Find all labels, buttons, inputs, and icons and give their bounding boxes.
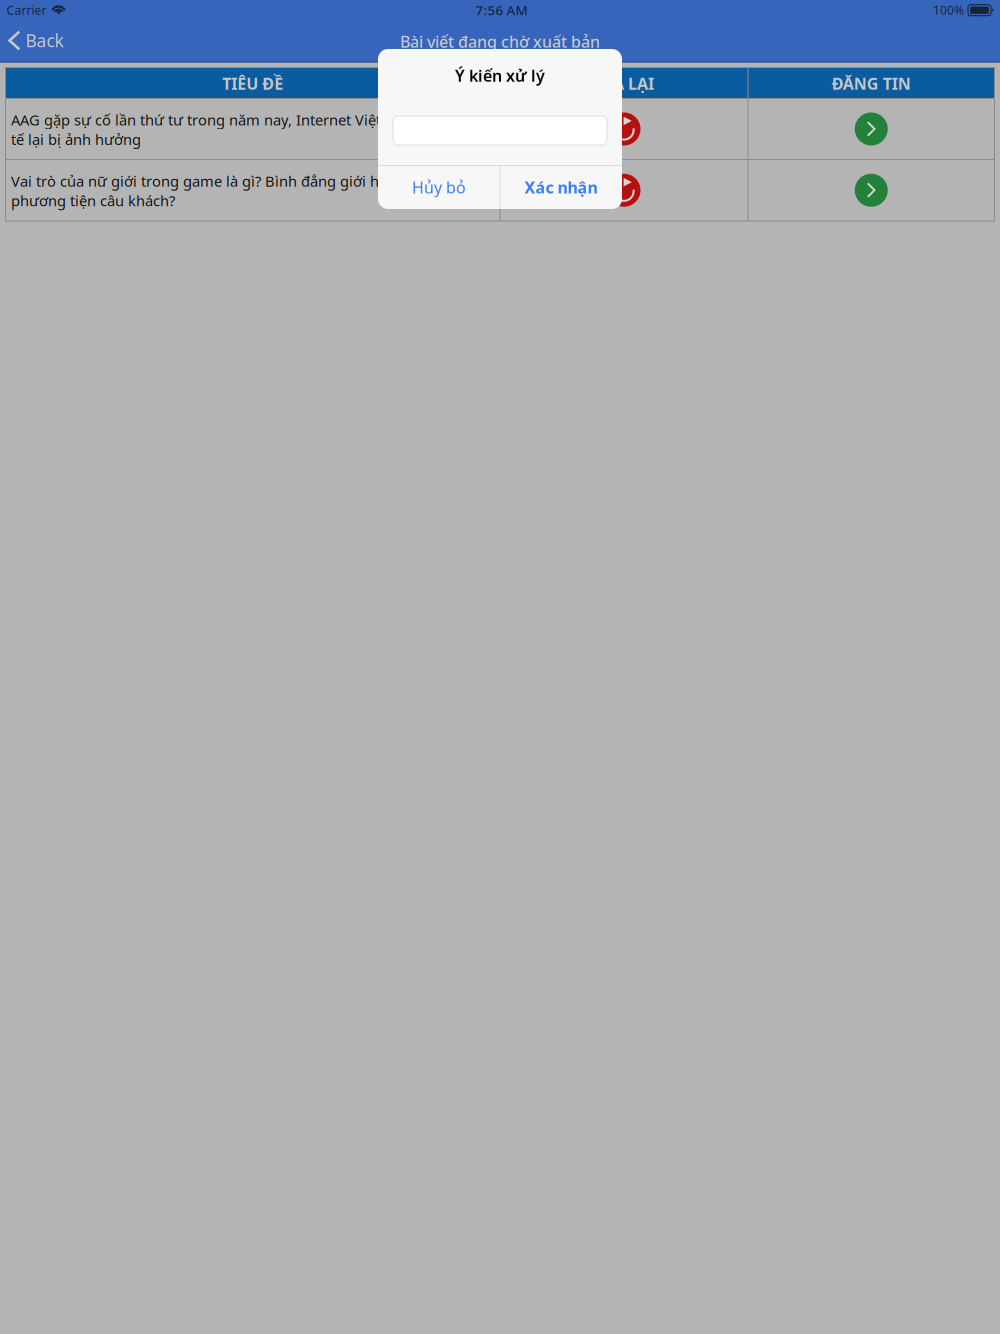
staticText: 100% (933, 2, 964, 18)
staticText: TRẢ LẠI (594, 73, 654, 94)
button[interactable]: Trả lại (607, 112, 640, 145)
staticText: Xác nhận (524, 177, 597, 198)
button[interactable]: Đăng tin (855, 112, 888, 145)
staticText: Hủy bỏ (412, 177, 466, 198)
button[interactable]: Hủy bỏ (378, 165, 500, 209)
button[interactable]: Trả lại (607, 174, 640, 207)
staticText: TIÊU ĐỀ (222, 73, 283, 94)
button[interactable]: Xác nhận (500, 165, 622, 209)
staticText: AAG gặp sự cố lần thứ tư trong năm nay, … (11, 110, 473, 149)
staticText: 7:56 AM (475, 1, 527, 19)
staticText: Bài viết đang chờ xuất bản (400, 31, 600, 52)
button[interactable]: Đăng tin (855, 174, 888, 207)
staticText: ĐĂNG TIN (832, 73, 911, 94)
staticText: Carrier (6, 2, 46, 18)
staticText: Ý kiến xử lý (455, 65, 545, 86)
staticText: Back (25, 29, 63, 52)
button[interactable]: Back (0, 23, 92, 57)
staticText: Vai trò của nữ giới trong game là gì? Bì… (11, 171, 434, 210)
